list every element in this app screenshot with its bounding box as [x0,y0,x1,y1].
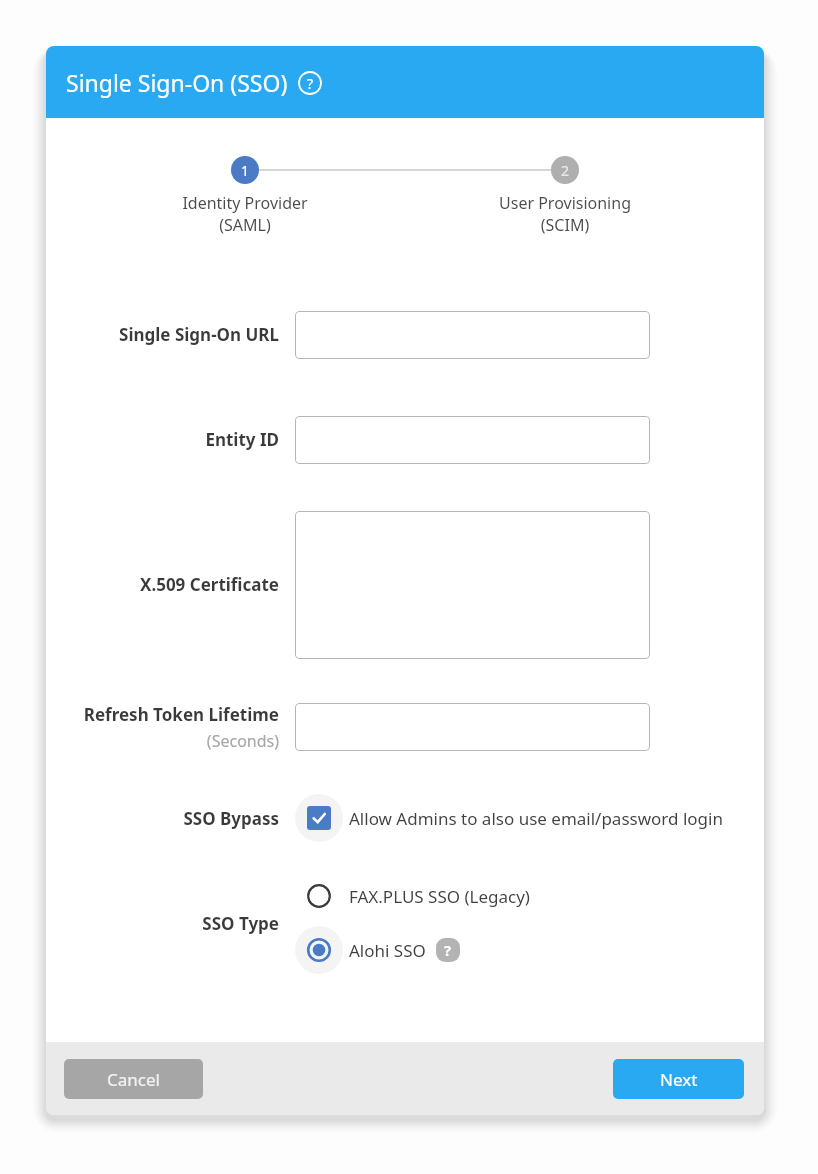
staticText: ? [307,74,314,93]
staticText: Next [660,1068,698,1091]
button[interactable]: Next [613,1059,744,1099]
button[interactable]: 2 [465,156,665,236]
button[interactable]: Alohi SSO [295,926,460,974]
staticText: Entity ID [205,428,279,451]
staticText: X.509 Certificate [139,573,279,596]
button[interactable]: Help [436,938,460,962]
button[interactable]: 1 [231,156,259,184]
staticText: Cancel [107,1068,160,1091]
button[interactable]: Cancel [64,1059,203,1099]
staticText: User Provisioning (SCIM) [499,192,631,236]
staticText: (Seconds) [206,730,279,752]
staticText: FAX.PLUS SSO (Legacy) [349,885,530,908]
button[interactable] [295,416,650,464]
button[interactable]: Allow Admins to also use email/password … [295,794,723,842]
staticText: Alohi SSO [349,939,426,962]
staticText: 2 [561,161,570,180]
staticText: SSO Bypass [183,807,279,830]
staticText: Single Sign-On URL [119,323,279,346]
staticText: Allow Admins to also use email/password … [349,807,723,830]
staticText: Single Sign-On (SSO) [66,67,288,98]
button[interactable]: 1 [145,156,345,236]
staticText: ? [444,940,452,960]
button[interactable]: Help about Single Sign-On [298,71,322,95]
staticText: Refresh Token Lifetime [83,703,279,726]
staticText: 1 [241,161,250,180]
button[interactable] [295,311,650,359]
button[interactable] [295,703,650,751]
button[interactable]: 2 [551,156,579,184]
staticText: SSO Type [202,912,279,935]
staticText: Identity Provider (SAML) [182,192,308,236]
button[interactable] [295,511,650,659]
button[interactable]: FAX.PLUS SSO (Legacy) [295,872,530,920]
